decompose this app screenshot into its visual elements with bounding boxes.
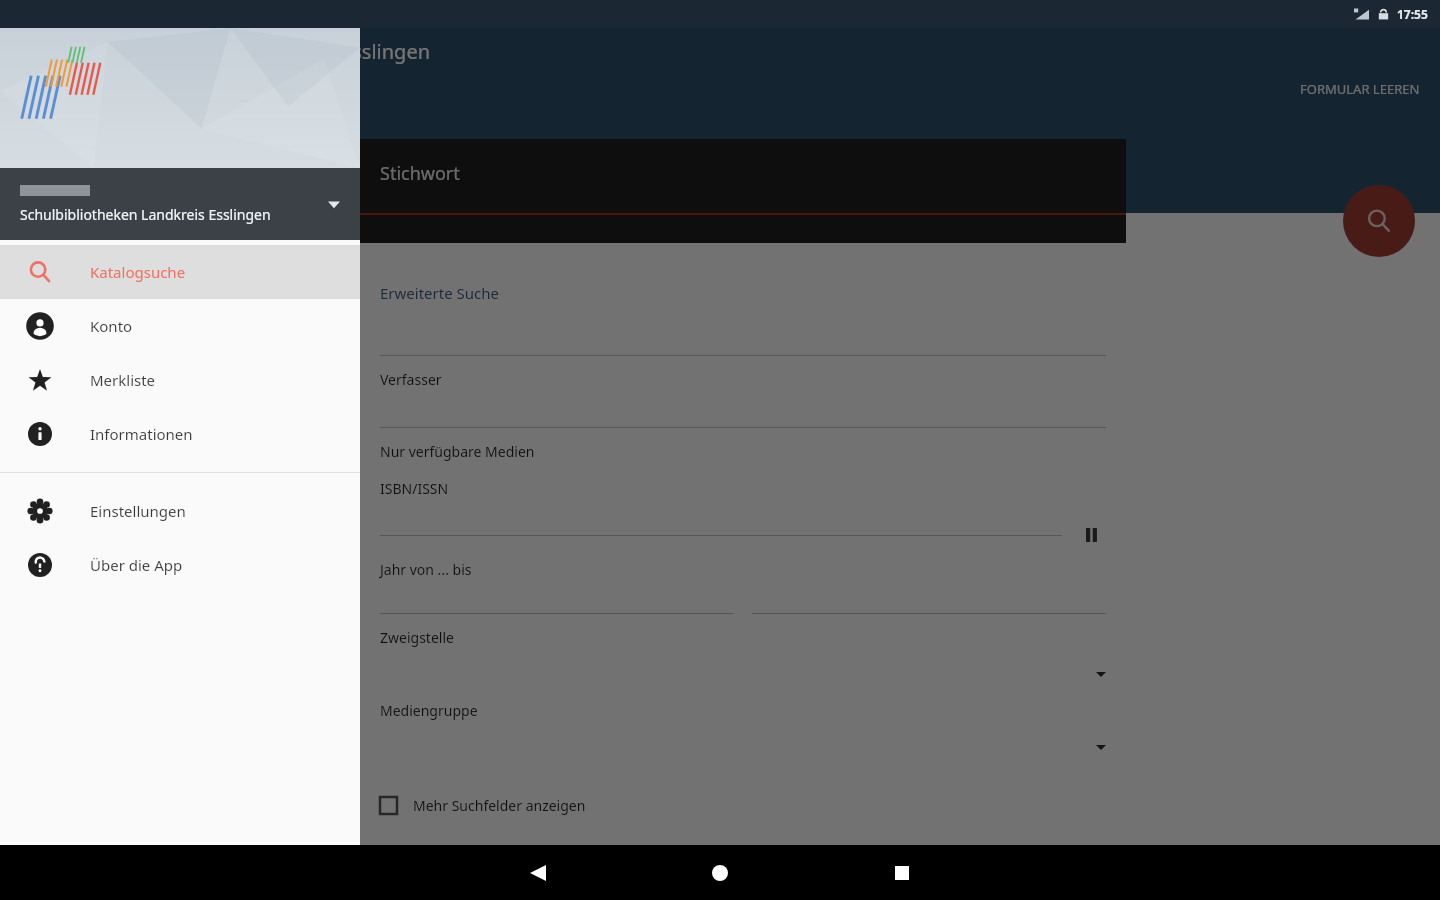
staticText: ISBN/ISSN	[380, 479, 449, 498]
button[interactable]: Mediengruppe	[360, 701, 1126, 774]
button[interactable]: Startbildschirm	[696, 849, 744, 897]
staticText: Landkreis Esslingen	[72, 71, 202, 90]
button[interactable]: Über die App	[0, 538, 360, 592]
staticText: Informationen	[90, 424, 193, 444]
button[interactable]: Einstellungen	[0, 484, 360, 538]
staticText: Über die App	[90, 555, 183, 575]
staticText: FORMULAR LEEREN	[1300, 80, 1420, 98]
button[interactable]: Barcode scannen	[1080, 522, 1106, 548]
button[interactable]: Übersicht	[878, 849, 926, 897]
button[interactable]: Merkliste	[0, 353, 360, 407]
button[interactable]: Katalogsuche	[0, 245, 360, 299]
button[interactable]: Zweigstelle	[360, 628, 1126, 701]
staticText: Jahr von ... bis	[380, 560, 472, 579]
button[interactable]: Konto	[0, 299, 360, 353]
staticText: Verfasser	[380, 370, 442, 389]
button[interactable]	[0, 28, 1440, 845]
staticText: Stichwort	[380, 161, 460, 186]
staticText: 17:55	[1397, 6, 1428, 22]
staticText: Konto	[90, 316, 133, 336]
button[interactable]: Zurück	[514, 849, 562, 897]
button[interactable]: FORMULAR LEEREN	[1292, 74, 1428, 104]
staticText: Merkliste	[90, 370, 156, 390]
staticText: Zweigstelle	[380, 628, 454, 647]
staticText: Schulbibliotheken Landkreis Esslingen	[72, 38, 431, 65]
staticText: Schulbibliotheken Landkreis Esslingen	[20, 205, 271, 224]
button[interactable]: Schulbibliotheken Landkreis Esslingen	[0, 168, 360, 240]
staticText: Katalogsuche	[90, 262, 186, 282]
staticText: Nur verfügbare Medien	[380, 442, 535, 461]
staticText: Mehr Suchfelder anzeigen	[413, 796, 586, 815]
staticText: Einstellungen	[90, 501, 186, 521]
button[interactable]: Informationen	[0, 407, 360, 461]
staticText: Mediengruppe	[380, 701, 478, 720]
button[interactable]: Suchen	[1343, 185, 1415, 257]
button[interactable]: Mehr Suchfelder anzeigen	[360, 792, 1126, 819]
staticText: Erweiterte Suche	[380, 283, 499, 303]
